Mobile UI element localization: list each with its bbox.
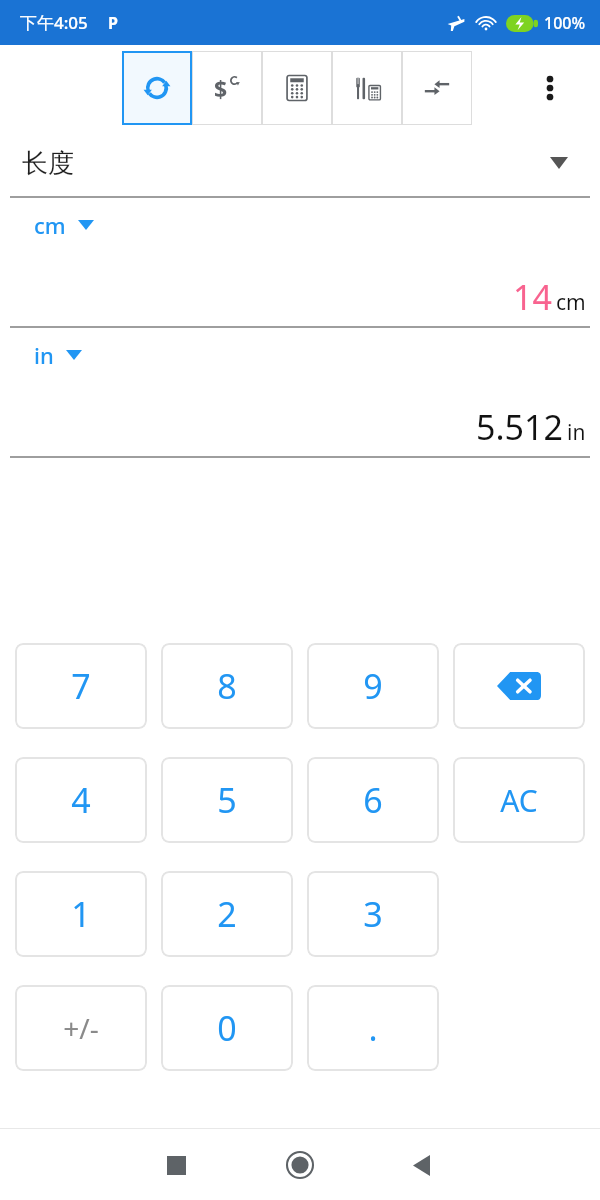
button[interactable]: Unit converter [122,51,192,125]
button[interactable]: Compare [402,51,472,125]
staticText: 8 [217,663,237,709]
button[interactable]: 3 [307,871,439,957]
staticText: 5 [217,777,237,823]
staticText: 1 [71,891,91,937]
staticText: 7 [71,663,91,709]
staticText: cm [556,288,586,317]
button[interactable]: More options [530,68,570,108]
staticText: 长度 [22,147,74,180]
button[interactable]: 9 [307,643,439,729]
button[interactable]: cm [34,210,94,240]
button[interactable]: 8 [161,643,293,729]
staticText: 0 [217,1005,237,1051]
staticText: 3 [363,891,383,937]
button[interactable]: +/- [15,985,147,1071]
button[interactable]: AC [453,757,585,843]
button[interactable]: 长度 [0,130,600,196]
button[interactable]: 4 [15,757,147,843]
staticText: +/- [63,1009,99,1047]
staticText: 2 [217,891,237,937]
button[interactable]: Recent apps [152,1141,200,1189]
staticText: 4 [71,777,91,823]
staticText: 14 [513,274,552,320]
staticText: . [368,1005,378,1051]
button[interactable]: 7 [15,643,147,729]
button[interactable]: Currency converter [192,51,262,125]
button[interactable]: Home [276,1141,324,1189]
button[interactable]: Backspace [453,643,585,729]
button[interactable]: Tip calculator [332,51,402,125]
button[interactable]: Calculator [262,51,332,125]
staticText: 9 [363,663,383,709]
button[interactable]: 2 [161,871,293,957]
staticText: in [34,340,54,370]
button[interactable]: 5 [161,757,293,843]
button[interactable]: in [34,340,82,370]
staticText: 5.512 [476,404,563,450]
staticText: P [108,12,118,34]
staticText: 6 [363,777,383,823]
button[interactable]: 6 [307,757,439,843]
staticText: cm [34,210,66,240]
staticText: AC [500,780,538,821]
button[interactable]: . [307,985,439,1071]
button[interactable]: Back [397,1141,445,1189]
staticText: 下午4:05 [20,11,88,34]
staticText: 100% [544,12,586,34]
staticText: $ [214,73,228,104]
staticText: in [567,418,586,447]
button[interactable]: 0 [161,985,293,1071]
button[interactable]: 1 [15,871,147,957]
